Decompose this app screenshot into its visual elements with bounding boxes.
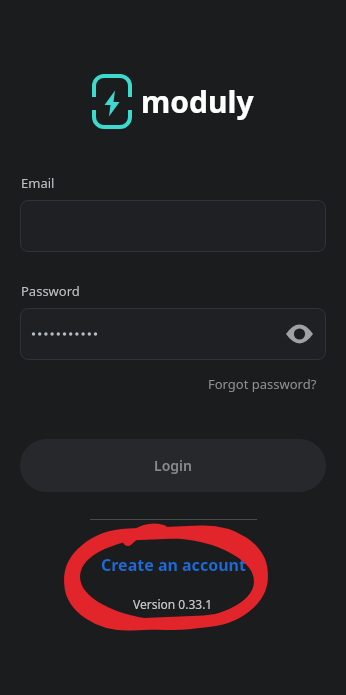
staticText: Create an account <box>101 554 246 576</box>
button[interactable] <box>20 308 326 360</box>
button[interactable]: Create an account <box>101 554 246 576</box>
staticText: Version 0.33.1 <box>133 596 213 612</box>
staticText: moduly <box>141 81 254 122</box>
button[interactable] <box>20 200 326 252</box>
staticText: Login <box>154 456 192 475</box>
button[interactable]: Login <box>20 439 326 492</box>
button[interactable]: Forgot password? <box>208 375 317 393</box>
staticText: Email <box>21 174 55 192</box>
staticText: Password <box>21 282 80 300</box>
